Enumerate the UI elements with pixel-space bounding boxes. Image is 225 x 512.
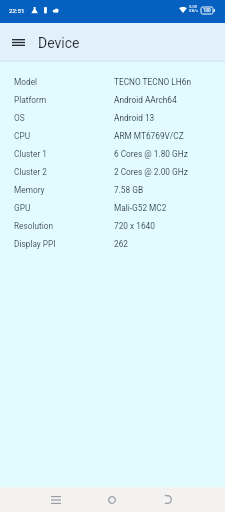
staticText: 2 Cores @ 2.00 GHz [114, 167, 188, 177]
staticText: KB/s [189, 8, 199, 13]
button[interactable]: Home [100, 487, 124, 512]
button[interactable]: Memory [0, 181, 225, 199]
button[interactable]: Resolution [0, 217, 225, 235]
staticText: Cluster 2 [14, 167, 47, 177]
button[interactable]: Recent apps [44, 487, 68, 512]
staticText: GPU [14, 203, 31, 213]
staticText: 7.58 GB [114, 185, 144, 195]
button[interactable]: Back [155, 487, 179, 512]
staticText: Platform [14, 95, 47, 105]
button[interactable]: OS [0, 109, 225, 127]
staticText: Cluster 1 [14, 149, 47, 159]
button[interactable]: Cluster 1 [0, 145, 225, 163]
staticText: Android AArch64 [114, 95, 177, 105]
staticText: 5.00 [189, 4, 198, 9]
staticText: 262 [114, 239, 128, 249]
button[interactable]: Platform [0, 91, 225, 109]
staticText: Mali-G52 MC2 [114, 203, 167, 213]
button[interactable]: CPU [0, 127, 225, 145]
staticText: ARM MT6769V/CZ [114, 131, 184, 141]
staticText: 720 x 1640 [114, 221, 155, 231]
staticText: Device [38, 35, 80, 51]
button[interactable]: Model [0, 73, 225, 91]
staticText: 22:51 [9, 7, 25, 14]
button[interactable]: GPU [0, 199, 225, 217]
staticText: 100 [203, 8, 211, 13]
staticText: Android 13 [114, 113, 155, 123]
button[interactable]: Menu [6, 23, 30, 62]
staticText: CPU [14, 131, 31, 141]
button[interactable]: Cluster 2 [0, 163, 225, 181]
staticText: 6 Cores @ 1.80 GHz [114, 149, 188, 159]
button[interactable]: Display PPI [0, 235, 225, 253]
staticText: OS [14, 113, 25, 123]
staticText: TECNO TECNO LH6n [114, 77, 191, 87]
staticText: Model [14, 77, 38, 87]
staticText: Memory [14, 185, 45, 195]
staticText: Display PPI [14, 239, 56, 249]
staticText: Resolution [14, 221, 54, 231]
